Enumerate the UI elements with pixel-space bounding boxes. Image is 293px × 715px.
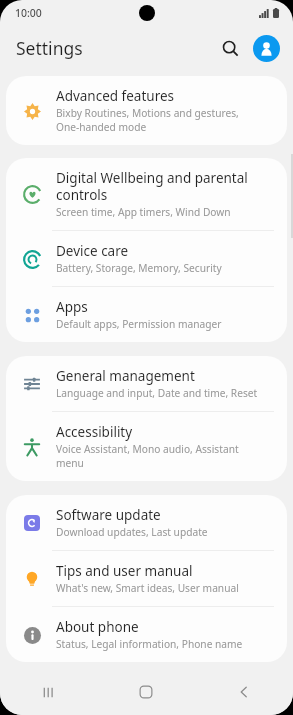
button[interactable]: Tips and user manual (6, 551, 287, 606)
button[interactable]: Recents (0, 670, 97, 714)
button[interactable]: Back (195, 670, 293, 714)
staticText: Tips and user manual (56, 562, 193, 580)
staticText: About phone (56, 618, 139, 636)
staticText: Default apps, Permission manager (56, 317, 222, 331)
staticText: Advanced features (56, 87, 175, 105)
staticText: Battery, Storage, Memory, Security (56, 261, 222, 275)
staticText: Screen time, App timers, Wind Down (56, 205, 231, 219)
button[interactable]: About phone (6, 607, 287, 662)
staticText: What's new, Smart ideas, User manual (56, 581, 239, 595)
button[interactable]: Home (97, 670, 195, 714)
staticText: Bixby Routines, Motions and gestures, On… (56, 106, 239, 134)
staticText: Device care (56, 242, 129, 260)
button[interactable]: Advanced features (6, 76, 287, 145)
button[interactable]: General management (6, 356, 287, 411)
staticText: Accessibility (56, 423, 133, 441)
button[interactable]: Digital Wellbeing and parental controls (6, 158, 287, 230)
staticText: Download updates, Last update (56, 525, 208, 539)
staticText: Language and input, Date and time, Reset (56, 386, 258, 400)
button[interactable]: Software update (6, 495, 287, 550)
staticText: Voice Assistant, Mono audio, Assistant m… (56, 442, 239, 470)
staticText: Digital Wellbeing and parental controls (56, 169, 248, 204)
staticText: General management (56, 367, 195, 385)
staticText: Software update (56, 506, 161, 524)
staticText: 10:00 (15, 6, 42, 20)
staticText: Status, Legal information, Phone name (56, 637, 243, 651)
staticText: Settings (16, 36, 83, 60)
button[interactable]: Apps (6, 287, 287, 342)
staticText: Apps (56, 298, 88, 316)
button[interactable]: Accessibility (6, 412, 287, 481)
button[interactable]: Account (253, 35, 280, 62)
button[interactable]: Search (214, 32, 246, 64)
button[interactable]: Device care (6, 231, 287, 286)
